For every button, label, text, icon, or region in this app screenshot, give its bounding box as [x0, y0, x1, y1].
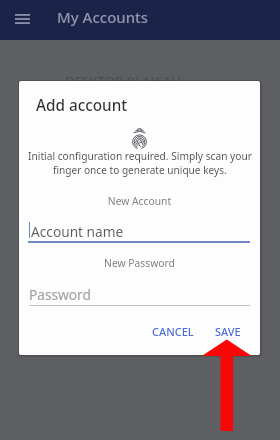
staticText: Password [29, 285, 91, 304]
staticText: Initial configuration required. Simply s… [28, 149, 252, 163]
staticText: New Account [19, 194, 260, 208]
staticText: DESKTOP-9LAJ6AU [65, 72, 181, 90]
staticText: CANCEL [152, 324, 194, 339]
button[interactable]: SAVE [204, 318, 260, 345]
staticText: New Password [19, 256, 260, 270]
staticText: Add account [36, 95, 128, 116]
button[interactable]: Open navigation drawer [0, 0, 44, 40]
staticText: finger once to generate unique keys. [53, 163, 227, 177]
staticText: My Accounts [57, 7, 149, 27]
button[interactable]: CANCEL [142, 318, 204, 345]
staticText: SAVE [215, 324, 241, 339]
staticText: Account name [31, 222, 124, 241]
